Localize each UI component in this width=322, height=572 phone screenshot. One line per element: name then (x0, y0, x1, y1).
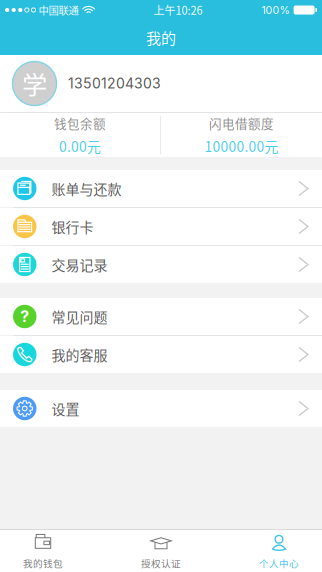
staticText: ? (20, 307, 29, 326)
button[interactable]: 银行卡 (0, 208, 322, 245)
staticText: 个人中心 (259, 556, 299, 570)
button[interactable]: 我的客服 (0, 336, 322, 373)
staticText: 学 (22, 65, 47, 102)
staticText: 我的 (146, 27, 176, 48)
staticText: 银行卡 (51, 216, 93, 237)
staticText: 钱包余额 (54, 114, 106, 132)
staticText: 常见问题 (51, 306, 107, 327)
staticText: 10000.00元 (204, 136, 278, 156)
button[interactable]: ? (0, 298, 322, 335)
staticText: 100% (262, 3, 290, 16)
staticText: 我的钱包 (23, 556, 63, 570)
button[interactable]: 我的钱包 (0, 529, 86, 572)
staticText: 账单与还款 (51, 178, 121, 199)
button[interactable]: 授权认证 (118, 529, 204, 572)
staticText: 中国联通 (39, 2, 79, 18)
staticText: 设置 (51, 398, 79, 419)
staticText: 闪电借额度 (209, 114, 274, 132)
button[interactable]: 账单与还款 (0, 170, 322, 207)
staticText: 0.00元 (59, 136, 101, 156)
staticText: 授权认证 (141, 556, 181, 570)
staticText: 13501204303 (68, 75, 161, 92)
staticText: 上午10:26 (154, 2, 203, 18)
button[interactable]: 个人中心 (236, 529, 322, 572)
button[interactable]: 交易记录 (0, 246, 322, 283)
staticText: 交易记录 (51, 254, 107, 275)
staticText: 我的客服 (51, 344, 107, 365)
button[interactable]: 设置 (0, 390, 322, 427)
